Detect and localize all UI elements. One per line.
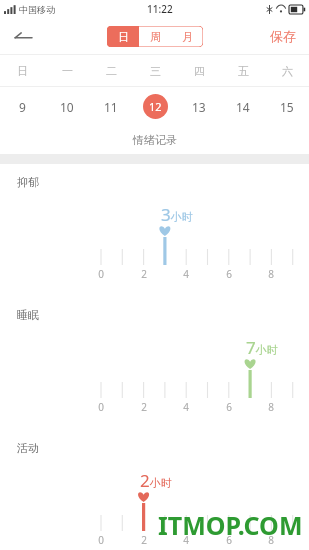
staticText: 12 [149,99,162,114]
button[interactable]: 10 [45,87,89,126]
staticText: 4 [183,533,189,547]
staticText: 9 [19,99,26,115]
staticText: 0 [98,400,104,414]
staticText: 二 [106,64,117,78]
staticText: 日 [118,30,129,44]
staticText: 3小时 [161,203,193,226]
staticText: 五 [238,64,249,78]
button[interactable]: Back [0,18,46,54]
staticText: 中国移动 [19,4,55,15]
staticText: 三 [150,64,161,78]
button[interactable]: 11 [89,87,133,126]
button[interactable]: 12 [133,87,177,126]
staticText: 4 [183,400,189,414]
staticText: 11 [104,99,118,115]
button[interactable]: 9 [0,87,45,126]
staticText: 11:22 [147,2,173,16]
button[interactable]: 13 [177,87,221,126]
button[interactable]: 周 [139,26,171,47]
staticText: 六 [282,64,293,78]
staticText: 2小时 [140,469,172,492]
staticText: 2 [141,267,147,281]
button[interactable]: 14 [221,87,265,126]
staticText: 日 [17,64,28,78]
staticText: 活动 [17,441,39,455]
button[interactable]: 月 [171,26,203,47]
staticText: 0 [98,267,104,281]
staticText: ITMOP.COM [158,508,303,542]
button[interactable]: 15 [265,87,309,126]
button[interactable]: 保存 [257,18,309,54]
staticText: 8 [268,267,274,281]
staticText: 情绪记录 [133,133,177,147]
staticText: 7小时 [246,336,278,359]
staticText: 6 [226,400,232,414]
staticText: 2 [141,400,147,414]
button[interactable]: 日 [107,26,139,47]
staticText: 抑郁 [17,175,39,189]
staticText: 6 [226,533,232,547]
staticText: 13 [192,99,206,115]
staticText: 一 [62,64,73,78]
staticText: 15 [280,99,294,115]
staticText: 8 [268,400,274,414]
staticText: 2 [141,533,147,547]
staticText: 周 [150,30,161,44]
staticText: 14 [236,99,250,115]
staticText: 6 [226,267,232,281]
staticText: 10 [60,99,74,115]
staticText: 4 [183,267,189,281]
staticText: 睡眠 [17,308,39,322]
staticText: 四 [194,64,205,78]
staticText: 保存 [270,28,296,44]
staticText: 8 [268,533,274,547]
staticText: 月 [182,30,193,44]
staticText: 0 [98,533,104,547]
